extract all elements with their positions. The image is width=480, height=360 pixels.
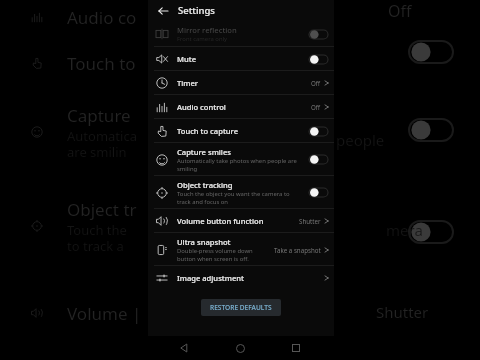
staticText: RESTORE DEFAULTS (210, 303, 272, 312)
button[interactable]: RESTORE DEFAULTS (201, 299, 281, 316)
button[interactable]: Volume button function (148, 209, 334, 233)
staticText: Timer (177, 78, 199, 88)
button[interactable]: Image adjustment (148, 266, 334, 290)
staticText: Off (311, 79, 321, 87)
staticText: Volume button function (177, 216, 264, 226)
staticText: Mirror reflection (177, 25, 237, 35)
button[interactable]: Back (154, 2, 171, 19)
staticText: Take a snapshot (274, 246, 321, 254)
staticText: Touch to capture (177, 126, 238, 136)
staticText: people (336, 130, 385, 150)
staticText: Audio co (67, 6, 137, 29)
staticText: Volume | (67, 302, 142, 325)
staticText: Touch to (67, 52, 136, 75)
staticText: mera (386, 220, 423, 240)
button[interactable]: Back (169, 336, 199, 360)
button[interactable]: Audio control (148, 95, 334, 119)
staticText: Capture (67, 104, 131, 127)
staticText: Audio control (177, 102, 226, 112)
staticText: Touch the object you want the camera to … (177, 190, 304, 205)
staticText: Front camera only (177, 35, 228, 43)
button[interactable]: Ultra snapshot (148, 233, 334, 266)
staticText: Capture smiles (177, 147, 231, 157)
staticText: Ultra snapshot (177, 237, 231, 247)
button[interactable]: Mute (148, 47, 334, 71)
staticText: Settings (178, 4, 215, 17)
staticText: Object tracking (177, 180, 233, 190)
staticText: Shutter (376, 302, 429, 322)
staticText: Double-press volume down button when scr… (177, 247, 270, 262)
staticText: Touch the to track a (67, 221, 127, 254)
button[interactable]: Timer (148, 71, 334, 95)
staticText: Shutter (299, 217, 321, 225)
staticText: Automatically take photos when people ar… (177, 157, 304, 172)
button[interactable]: Capture smiles (148, 143, 334, 176)
staticText: Object tr (67, 198, 137, 221)
button[interactable]: Home (225, 336, 255, 360)
staticText: Automatica are smilin (67, 127, 137, 160)
staticText: Image adjustment (177, 273, 244, 283)
button[interactable]: Mirror reflection (148, 21, 334, 47)
button[interactable]: Touch to capture (148, 119, 334, 143)
staticText: Mute (177, 54, 196, 64)
button[interactable]: Object tracking (148, 176, 334, 209)
staticText: Off (311, 103, 321, 111)
button[interactable]: Recents (281, 336, 311, 360)
staticText: Off (388, 0, 412, 22)
